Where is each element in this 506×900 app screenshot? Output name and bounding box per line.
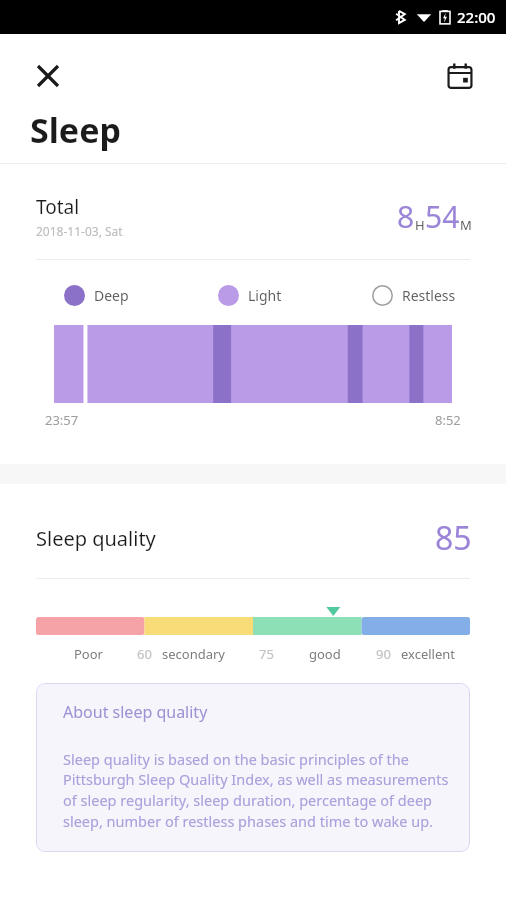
staticText: 85 — [435, 516, 472, 560]
staticText: 8 — [397, 196, 415, 237]
staticText: excellent — [401, 645, 456, 663]
staticText: 54 — [425, 196, 460, 237]
staticText: 75 — [259, 645, 274, 663]
button[interactable]: Deep — [64, 285, 129, 306]
staticText: 90 — [376, 645, 391, 663]
staticText: Deep — [94, 286, 129, 305]
staticText: 60 — [137, 645, 152, 663]
button[interactable]: About sleep quality — [36, 683, 470, 852]
staticText: Sleep — [30, 107, 121, 153]
staticText: 22:00 — [457, 7, 496, 27]
staticText: Total — [36, 194, 80, 220]
staticText: Sleep quality — [36, 525, 435, 552]
button[interactable]: Calendar — [434, 50, 486, 102]
button[interactable]: Light — [218, 285, 282, 306]
button[interactable]: Close — [22, 50, 74, 102]
staticText: Light — [248, 286, 282, 305]
button[interactable]: Restless — [372, 285, 456, 306]
staticText: 23:57 — [45, 411, 79, 429]
staticText: Restless — [402, 286, 456, 305]
staticText: M — [460, 216, 472, 234]
staticText: good — [309, 645, 341, 663]
staticText: H — [415, 216, 425, 234]
staticText: secondary — [162, 645, 225, 663]
staticText: 8:52 — [435, 411, 461, 429]
staticText: Sleep quality is based on the basic prin… — [63, 749, 450, 832]
staticText: 2018-11-03, Sat — [36, 223, 123, 239]
staticText: About sleep quality — [63, 701, 208, 723]
staticText: Poor — [74, 645, 103, 663]
